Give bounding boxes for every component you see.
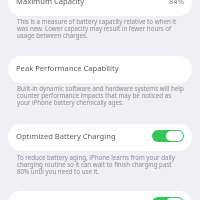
staticText: This is a measure of battery capacity re… <box>17 19 184 40</box>
button[interactable]: Maximum Capacity <box>8 0 192 16</box>
button[interactable]: Clean Energy Charging <box>152 197 184 200</box>
staticText: Peak Performance Capability <box>16 64 184 73</box>
staticText: 84% <box>169 0 184 6</box>
staticText: To reduce battery aging, iPhone learns f… <box>17 155 184 176</box>
button[interactable]: Peak Performance Capability <box>8 56 192 83</box>
staticText: Maximum Capacity <box>16 0 169 6</box>
button[interactable]: Optimized Battery Charging <box>152 130 184 142</box>
button[interactable]: Optimized Battery Charging <box>8 124 192 151</box>
staticText: Built-in dynamic software and hardware s… <box>17 86 184 107</box>
button[interactable]: Clean Energy Charging <box>8 191 192 200</box>
staticText: Optimized Battery Charging <box>16 132 152 141</box>
